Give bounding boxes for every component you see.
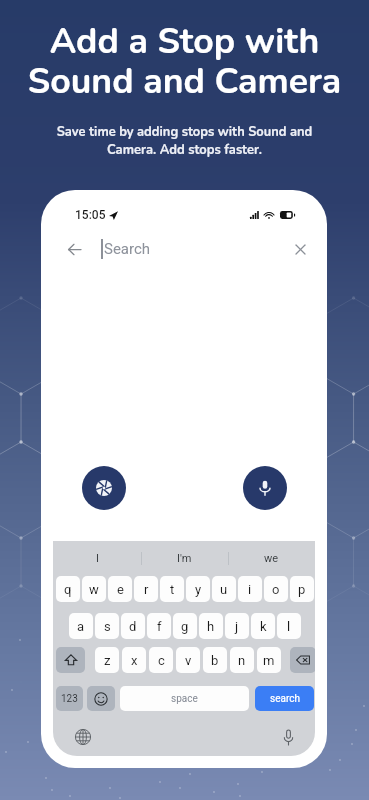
- button[interactable]: m: [257, 647, 281, 673]
- staticText: 15:05: [75, 208, 106, 222]
- staticText: j: [235, 619, 239, 634]
- staticText: d: [129, 619, 137, 634]
- button[interactable]: c: [149, 647, 173, 673]
- staticText: h: [207, 619, 215, 634]
- button[interactable]: t: [160, 576, 184, 602]
- button[interactable]: Voice input: [276, 725, 300, 749]
- button[interactable]: u: [212, 576, 236, 602]
- button[interactable]: space: [120, 686, 249, 711]
- staticText: z: [104, 653, 111, 668]
- staticText: y: [195, 582, 202, 597]
- button[interactable]: v: [176, 647, 200, 673]
- staticText: v: [185, 653, 192, 668]
- staticText: l: [287, 619, 291, 634]
- button[interactable]: e: [108, 576, 132, 602]
- staticText: o: [272, 582, 280, 597]
- button[interactable]: d: [121, 613, 145, 639]
- button[interactable]: Change keyboard language: [71, 725, 95, 749]
- button[interactable]: k: [251, 613, 275, 639]
- button[interactable]: search: [255, 686, 314, 711]
- button[interactable]: s: [95, 613, 119, 639]
- button[interactable]: q: [56, 576, 80, 602]
- button[interactable]: z: [95, 647, 119, 673]
- staticText: Add a Stop with Sound and Camera: [0, 17, 369, 105]
- button[interactable]: Shift: [56, 647, 85, 673]
- staticText: x: [131, 653, 138, 668]
- staticText: space: [171, 693, 198, 705]
- button[interactable]: Back: [60, 235, 88, 263]
- button[interactable]: I'm: [141, 541, 228, 576]
- staticText: e: [117, 582, 124, 597]
- staticText: w: [89, 582, 99, 597]
- staticText: f: [157, 619, 162, 634]
- staticText: Search: [104, 240, 151, 258]
- staticText: search: [270, 693, 300, 705]
- button[interactable]: w: [82, 576, 106, 602]
- button[interactable]: l: [277, 613, 301, 639]
- button[interactable]: o: [264, 576, 288, 602]
- staticText: 123: [61, 693, 78, 705]
- button[interactable]: f: [147, 613, 171, 639]
- button[interactable]: Voice search: [243, 466, 287, 510]
- button[interactable]: n: [230, 647, 254, 673]
- button[interactable]: Clear search: [287, 236, 313, 262]
- staticText: g: [181, 619, 189, 634]
- staticText: u: [220, 582, 228, 597]
- button[interactable]: r: [134, 576, 158, 602]
- button[interactable]: 123: [56, 686, 83, 711]
- button[interactable]: a: [69, 613, 93, 639]
- button[interactable]: x: [122, 647, 146, 673]
- staticText: n: [238, 653, 246, 668]
- button[interactable]: y: [186, 576, 210, 602]
- staticText: q: [64, 582, 72, 597]
- staticText: p: [298, 582, 306, 597]
- button[interactable]: I: [53, 541, 141, 576]
- staticText: Save time by adding stops with Sound and…: [0, 123, 369, 159]
- button[interactable]: i: [238, 576, 262, 602]
- button[interactable]: j: [225, 613, 249, 639]
- button[interactable]: b: [203, 647, 227, 673]
- button[interactable]: Backspace: [290, 647, 315, 673]
- button[interactable]: g: [173, 613, 197, 639]
- staticText: i: [248, 582, 252, 597]
- staticText: we: [264, 552, 279, 565]
- staticText: b: [211, 653, 219, 668]
- staticText: r: [144, 582, 149, 597]
- staticText: I: [96, 552, 99, 565]
- staticText: c: [158, 653, 165, 668]
- button[interactable]: we: [228, 541, 315, 576]
- staticText: I'm: [177, 552, 192, 565]
- staticText: s: [104, 619, 111, 634]
- button[interactable]: p: [290, 576, 314, 602]
- button[interactable]: Camera search: [82, 466, 126, 510]
- staticText: t: [170, 582, 175, 597]
- button[interactable]: h: [199, 613, 223, 639]
- staticText: k: [260, 619, 267, 634]
- staticText: a: [77, 619, 85, 634]
- staticText: m: [263, 653, 275, 668]
- button[interactable]: Emoji: [87, 686, 115, 711]
